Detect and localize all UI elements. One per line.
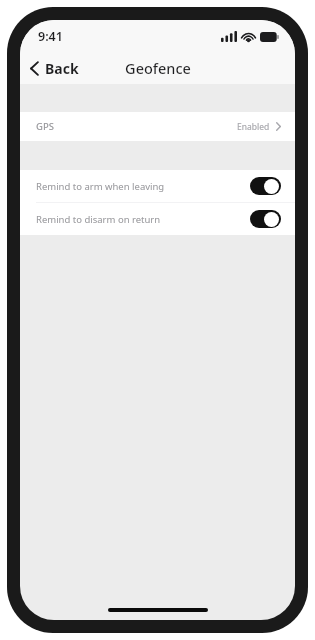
button[interactable]: Toggle, on (250, 210, 281, 228)
staticText: Back (45, 59, 79, 78)
staticText: Enabled (237, 121, 270, 133)
button[interactable]: GPS (20, 112, 295, 141)
staticText: Remind to arm when leaving (36, 180, 165, 193)
button[interactable]: Remind to disarm on return (20, 203, 295, 235)
staticText: 9:41 (38, 28, 63, 45)
button[interactable]: Remind to arm when leaving (20, 170, 295, 202)
staticText: Remind to disarm on return (36, 213, 161, 226)
button[interactable]: Back (20, 55, 89, 82)
staticText: Geofence (125, 58, 191, 78)
staticText: GPS (36, 120, 54, 133)
button[interactable]: Toggle, on (250, 177, 281, 195)
